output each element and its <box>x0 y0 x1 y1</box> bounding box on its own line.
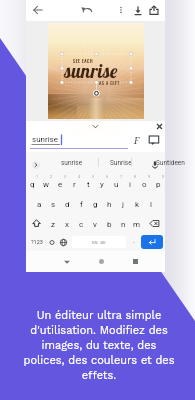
staticText: q <box>30 180 35 189</box>
button[interactable]: More options <box>114 3 128 17</box>
staticText: . <box>133 237 135 245</box>
staticText: j <box>122 200 124 209</box>
staticText: ?123 <box>31 239 43 245</box>
button[interactable]: m <box>130 213 144 233</box>
staticText: Un éditeur ultra simple d'utilisation. M… <box>21 309 177 381</box>
staticText: 1 <box>36 175 39 179</box>
button[interactable]: u <box>109 173 123 193</box>
button[interactable]: Sunrise <box>78 152 164 173</box>
button[interactable]: sunrise <box>30 133 130 151</box>
staticText: p <box>156 180 161 189</box>
staticText: SEE EACH <box>73 58 94 65</box>
staticText: z <box>51 220 55 229</box>
staticText: k <box>135 200 140 209</box>
staticText: Suntideen <box>156 159 185 167</box>
button[interactable]: i <box>123 173 137 193</box>
staticText: g <box>93 200 98 209</box>
staticText: c <box>79 220 84 229</box>
button[interactable]: d <box>60 193 74 213</box>
staticText: x <box>65 220 69 229</box>
button[interactable]: w <box>39 173 53 193</box>
staticText: 2 <box>50 175 53 179</box>
staticText: sunrise <box>32 135 58 144</box>
staticText: b <box>107 220 112 229</box>
button[interactable]: g <box>88 193 102 213</box>
button[interactable]: y <box>95 173 109 193</box>
staticText: 5 <box>92 175 95 179</box>
button[interactable]: Enter <box>141 235 163 249</box>
staticText: sunrise <box>64 59 118 83</box>
button[interactable]: x <box>60 213 74 233</box>
staticText: n <box>121 220 126 229</box>
button[interactable]: Shift <box>26 213 46 233</box>
button[interactable]: q <box>26 173 39 193</box>
staticText: u <box>114 180 119 189</box>
button[interactable]: Back <box>31 3 45 17</box>
staticText: i <box>129 180 131 189</box>
button[interactable]: a <box>32 193 46 213</box>
button[interactable]: Undo <box>80 3 94 17</box>
button[interactable]: Download <box>131 3 145 17</box>
button[interactable]: Backspace <box>144 213 165 233</box>
button[interactable]: ?123 <box>26 233 47 251</box>
staticText: t <box>87 180 90 189</box>
staticText: v <box>93 220 97 229</box>
staticText: m <box>133 220 141 229</box>
staticText: 6 <box>106 175 109 179</box>
button[interactable]: Back <box>53 251 81 272</box>
button[interactable]: Home <box>87 251 115 272</box>
button[interactable]: l <box>144 193 158 213</box>
staticText: s <box>51 200 56 209</box>
button[interactable]: f <box>74 193 88 213</box>
button[interactable]: Voice input <box>150 160 160 170</box>
staticText: 9 <box>148 175 151 179</box>
button[interactable]: Close <box>153 120 166 133</box>
button[interactable]: n <box>116 213 130 233</box>
button[interactable]: s <box>46 193 60 213</box>
staticText: sunrise <box>61 159 83 167</box>
button[interactable]: Language <box>57 233 70 251</box>
staticText: EN · DE <box>92 240 106 245</box>
staticText: y <box>100 180 104 189</box>
button[interactable]: Suntideen <box>111 152 195 173</box>
button[interactable]: e <box>53 173 67 193</box>
button[interactable]: More suggestions <box>32 161 40 169</box>
button[interactable]: Font <box>130 133 144 147</box>
button[interactable]: z <box>46 213 60 233</box>
staticText: 0 <box>162 175 165 179</box>
staticText: 3 <box>64 175 67 179</box>
staticText: a <box>37 200 42 209</box>
button[interactable]: . <box>128 233 139 251</box>
staticText: 4 <box>78 175 81 179</box>
button[interactable]: Share <box>147 3 161 17</box>
button[interactable]: h <box>102 193 116 213</box>
button[interactable]: j <box>116 193 130 213</box>
button[interactable]: p <box>151 173 165 193</box>
button[interactable]: Emoji <box>47 233 57 251</box>
staticText: F <box>134 134 140 146</box>
staticText: Sunrise <box>110 159 132 167</box>
staticText: 7 <box>120 175 123 179</box>
staticText: r <box>73 180 76 189</box>
button[interactable]: Collapse <box>89 120 102 133</box>
staticText: h <box>107 200 112 209</box>
staticText: w <box>43 180 50 189</box>
button[interactable]: o <box>137 173 151 193</box>
button[interactable]: EN · DE <box>72 236 126 248</box>
button[interactable]: Recents <box>121 251 149 272</box>
button[interactable]: v <box>88 213 102 233</box>
button[interactable]: t <box>81 173 95 193</box>
button[interactable]: k <box>130 193 144 213</box>
staticText: e <box>58 180 63 189</box>
staticText: d <box>65 200 70 209</box>
button[interactable]: b <box>102 213 116 233</box>
staticText: AS A GIFT <box>99 80 120 87</box>
button[interactable]: c <box>74 213 88 233</box>
button[interactable]: Text box <box>147 133 161 147</box>
button[interactable]: r <box>67 173 81 193</box>
staticText: o <box>142 180 147 189</box>
staticText: f <box>80 200 83 209</box>
staticText: l <box>150 200 152 209</box>
staticText: 8 <box>134 175 137 179</box>
button[interactable]: sunrise <box>45 152 99 173</box>
